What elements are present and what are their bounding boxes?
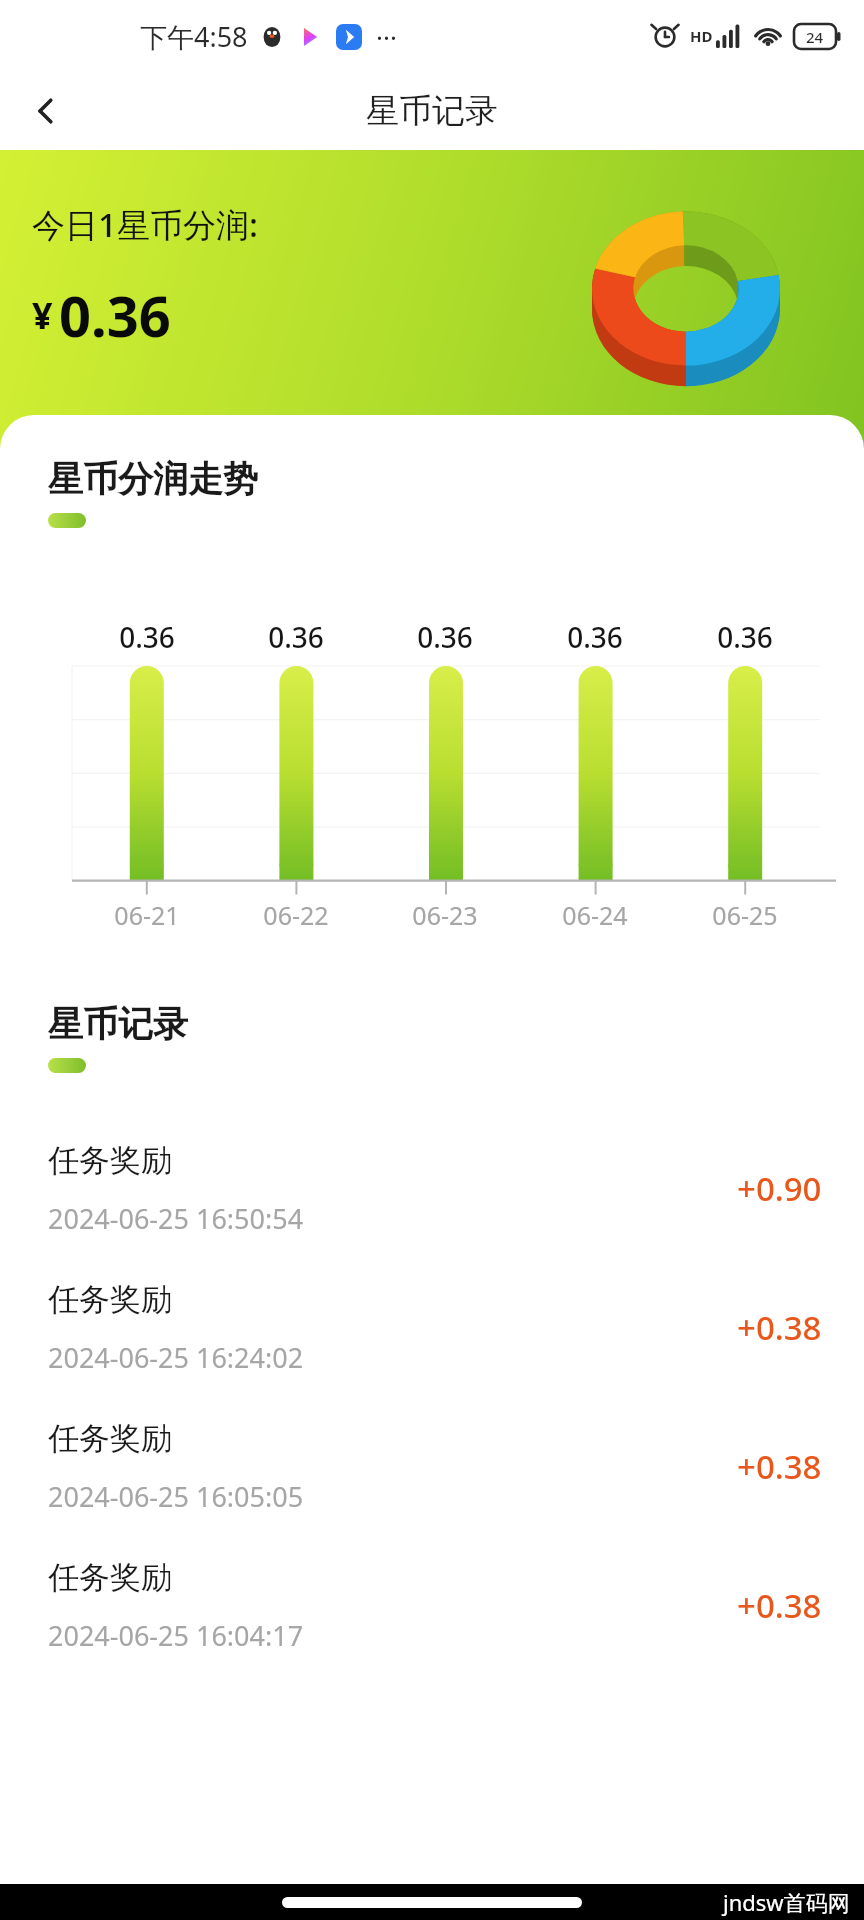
staticText: 0.36 bbox=[717, 618, 773, 656]
button[interactable]: 任务奖励 bbox=[0, 1119, 864, 1258]
staticText: 0.36 bbox=[567, 618, 623, 656]
staticText: 06-25 bbox=[712, 898, 778, 932]
staticText: 06-24 bbox=[562, 898, 628, 932]
staticText: 任务奖励 bbox=[48, 1280, 172, 1319]
staticText: jndsw首码网 bbox=[723, 1887, 850, 1917]
staticText: 0.36 bbox=[417, 618, 473, 656]
staticText: 星币记录 bbox=[48, 1002, 188, 1046]
staticText: 06-23 bbox=[412, 898, 478, 932]
button[interactable]: 任务奖励 bbox=[0, 1536, 864, 1675]
staticText: 任务奖励 bbox=[48, 1419, 172, 1458]
staticText: 星币分润走势 bbox=[48, 457, 258, 501]
staticText: 06-21 bbox=[114, 898, 180, 932]
staticText: ··· bbox=[376, 19, 397, 54]
button[interactable]: 任务奖励 bbox=[0, 1258, 864, 1397]
staticText: 0.36 bbox=[268, 618, 324, 656]
staticText: +0.38 bbox=[737, 1305, 822, 1350]
button[interactable]: 任务奖励 bbox=[0, 1397, 864, 1536]
staticText: 24 bbox=[806, 27, 824, 47]
staticText: HD bbox=[690, 26, 713, 46]
staticText: 2024-06-25 16:04:17 bbox=[48, 1617, 304, 1654]
staticText: 下午4:58 bbox=[140, 18, 248, 55]
staticText: 2024-06-25 16:05:05 bbox=[48, 1478, 304, 1515]
staticText: 任务奖励 bbox=[48, 1141, 172, 1180]
staticText: 2024-06-25 16:50:54 bbox=[48, 1200, 304, 1237]
staticText: 06-22 bbox=[263, 898, 329, 932]
staticText: +0.38 bbox=[737, 1583, 822, 1628]
staticText: ¥ bbox=[32, 291, 53, 340]
staticText: 任务奖励 bbox=[48, 1558, 172, 1597]
staticText: 0.36 bbox=[119, 618, 175, 656]
staticText: +0.90 bbox=[737, 1166, 822, 1211]
staticText: +0.38 bbox=[737, 1444, 822, 1489]
staticText: 星币记录 bbox=[366, 90, 498, 132]
button[interactable]: Back bbox=[14, 79, 78, 143]
staticText: 今日1星币分润: bbox=[32, 202, 258, 247]
staticText: 2024-06-25 16:24:02 bbox=[48, 1339, 304, 1376]
staticText: 0.36 bbox=[59, 277, 171, 353]
